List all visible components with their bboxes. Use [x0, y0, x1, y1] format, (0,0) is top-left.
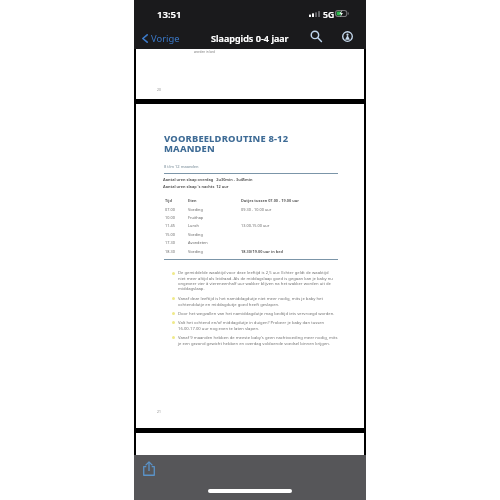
staticText: 5G [323, 9, 335, 21]
staticText: 17.30 [165, 240, 175, 245]
staticText: 09.30 - 10.00 uur [241, 207, 272, 212]
staticText: VOORBEELDROUTINE 8-12 MAANDEN [164, 132, 289, 155]
staticText: 20 [157, 87, 161, 92]
button[interactable]: Search [307, 27, 325, 45]
staticText: Aantal uren slaap 's nachts 12 uur [163, 184, 229, 189]
staticText: 11.45 [165, 223, 175, 228]
staticText: 07.00 [165, 207, 175, 212]
staticText: Tijd [165, 198, 172, 203]
button[interactable]: Vorige [139, 29, 184, 48]
staticText: 21 [157, 409, 161, 414]
staticText: Aantal uren slaap overdag 2u30min - 3u45… [163, 177, 253, 182]
staticText: Voeding [188, 249, 203, 254]
staticText: 18.30/19.00 uur in bed [241, 249, 283, 254]
button[interactable]: Share [138, 458, 159, 479]
staticText: 15.00 [165, 232, 175, 237]
staticText: Vorige [151, 32, 180, 45]
staticText: Vanaf deze leeftijd is het namiddagdutje… [178, 296, 344, 308]
staticText: 8 t/m 12 maanden [164, 164, 199, 169]
staticText: 13.00-15.00 uur [241, 223, 270, 228]
staticText: 10.00 [165, 215, 175, 220]
staticText: Eten [188, 198, 197, 203]
staticText: Vanaf 9 maanden hebben de meeste baby's … [178, 335, 344, 347]
button[interactable]: Account [339, 28, 356, 45]
staticText: Valt het ochtend en/of middagdutje in du… [178, 320, 344, 332]
staticText: Voeding [188, 207, 203, 212]
staticText: Lunch [188, 223, 199, 228]
staticText: Avondeten [188, 240, 208, 245]
staticText: Door het wegvallen van het namiddagdutje… [178, 311, 344, 317]
staticText: De gemiddelde waaktijd voor deze leeftij… [178, 270, 344, 292]
staticText: Slaapgids 0-4 jaar [211, 32, 289, 44]
staticText: Fruithap [188, 215, 204, 220]
staticText: Dutjes tussen 07.00 - 19.00 uur [241, 198, 299, 203]
staticText: Voeding [188, 232, 203, 237]
staticText: 18.30 [165, 249, 175, 254]
staticText: 13:51 [157, 8, 182, 21]
staticText: worden in bed [194, 50, 215, 54]
